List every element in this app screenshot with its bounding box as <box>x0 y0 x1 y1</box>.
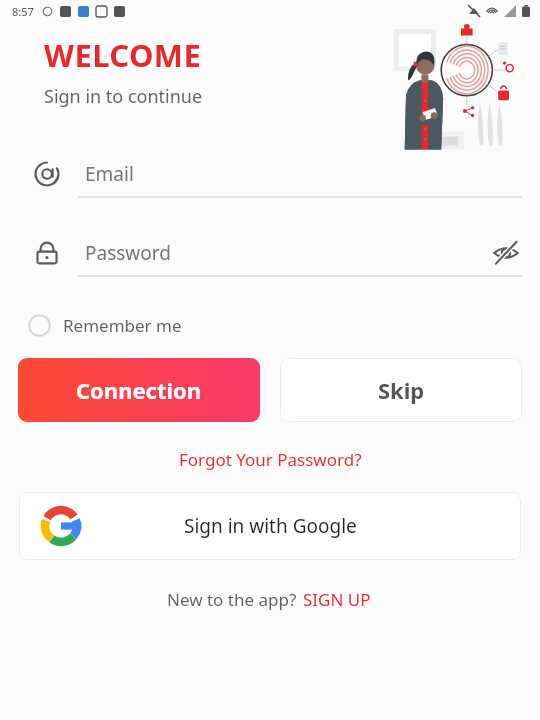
staticText: Skip <box>378 375 425 405</box>
button[interactable]: SIGN UP <box>301 584 373 615</box>
staticText: Password <box>85 240 171 266</box>
button[interactable]: Connection <box>18 358 260 422</box>
staticText: SIGN UP <box>303 588 371 611</box>
staticText: New to the app? <box>167 588 301 611</box>
button[interactable]: Skip <box>280 358 522 422</box>
staticText: Connection <box>76 375 202 405</box>
staticText: Sign in to continue <box>44 84 203 109</box>
button[interactable]: Remember me <box>28 307 194 343</box>
button[interactable]: Forgot Your Password? <box>163 440 378 479</box>
staticText: Sign in with Google <box>184 513 357 539</box>
staticText: Email <box>85 161 134 187</box>
button[interactable]: Sign in with Google <box>19 492 521 560</box>
staticText: WELCOME <box>44 34 202 76</box>
staticText: Remember me <box>63 314 182 337</box>
button[interactable]: Show password <box>484 231 528 275</box>
staticText: Forgot Your Password? <box>179 448 362 471</box>
staticText: 8:57 <box>12 4 34 19</box>
